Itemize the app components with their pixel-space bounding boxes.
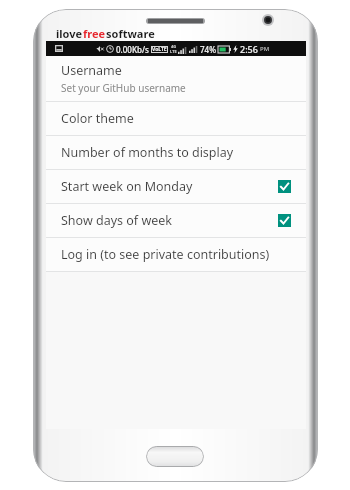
staticText: 0.00Kb/s xyxy=(116,44,149,55)
staticText: Number of months to display xyxy=(61,144,234,161)
staticText: Log in (to see private contributions) xyxy=(61,246,270,263)
staticText: Set your GitHub username xyxy=(61,81,186,95)
staticText: 74% xyxy=(200,44,216,55)
staticText: VoLTE xyxy=(152,46,167,53)
button[interactable]: Log in (to see private contributions) xyxy=(46,238,306,271)
staticText: LTE xyxy=(170,49,177,54)
staticText: Color theme xyxy=(61,110,134,127)
staticText: software xyxy=(106,26,155,41)
staticText: free xyxy=(83,26,106,41)
staticText: 4G xyxy=(171,44,177,49)
staticText: Show days of week xyxy=(61,212,278,229)
button[interactable]: Home xyxy=(146,446,204,467)
staticText: PM xyxy=(260,45,270,53)
staticText: Start week on Monday xyxy=(61,178,278,195)
staticText: 2:56 xyxy=(240,43,258,55)
button[interactable]: Username xyxy=(46,56,306,101)
button[interactable]: Show days of week xyxy=(46,204,306,237)
button[interactable]: Number of months to display xyxy=(46,136,306,169)
staticText: Username xyxy=(61,62,122,79)
button[interactable]: Color theme xyxy=(46,102,306,135)
staticText: ilove xyxy=(56,26,83,41)
button[interactable]: Start week on Monday xyxy=(46,170,306,203)
